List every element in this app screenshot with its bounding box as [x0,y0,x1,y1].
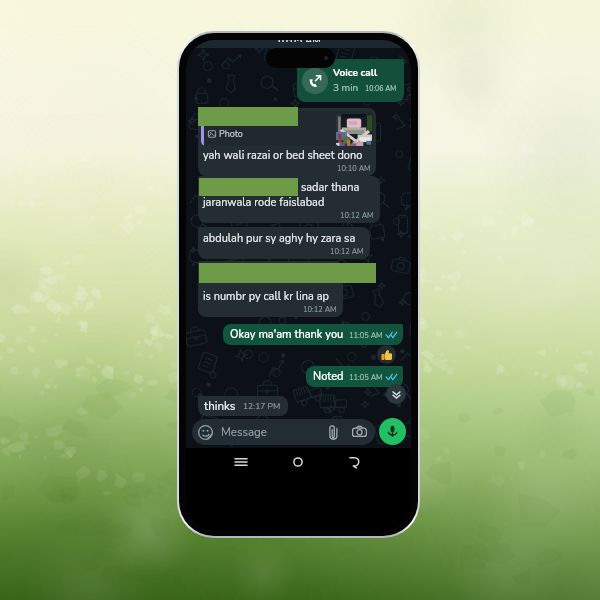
button[interactable]: Recent apps [227,448,255,476]
staticText: sadar thana [301,180,360,195]
button[interactable]: Okay ma'am thank you [223,324,403,345]
staticText: Noted [313,369,344,384]
staticText: Photo [219,128,243,140]
button[interactable]: Photo [198,108,376,176]
staticText: yah wali razai or bed sheet dono [203,148,363,163]
staticText: 10:05 AM [276,40,321,42]
staticText: Message [221,424,267,440]
staticText: 10:12 AM [340,210,374,220]
staticText: jaranwala rode faislabad [203,195,325,210]
staticText: 12:17 PM [243,400,281,412]
staticText: 11:05 AM [349,372,383,382]
staticText: Okay ma'am thank you [230,327,344,342]
staticText: thinks [204,398,236,414]
button[interactable]: Thumbs up reaction [377,345,396,364]
staticText: 10:12 AM [330,246,364,256]
button[interactable]: Record voice message [379,418,406,445]
button[interactable]: sadar thana [198,176,380,223]
button[interactable]: is numbr py call kr lina ap [198,261,343,317]
staticText: 11:05 AM [349,330,383,340]
staticText: Voice call [333,66,378,80]
staticText: 3 min [333,81,359,95]
button[interactable]: Noted [306,366,403,387]
staticText: is numbr py call kr lina ap [203,289,329,304]
staticText: 10:10 AM [337,163,371,173]
button[interactable]: Scroll to bottom [386,384,406,404]
button[interactable]: Home [284,448,312,476]
staticText: abdulah pur sy aghy hy zara sa [203,231,356,246]
staticText: 10:12 AM [303,304,337,314]
button[interactable]: abdulah pur sy aghy hy zara sa [198,227,370,259]
button[interactable]: Voice call [297,59,404,102]
staticText: 10:06 AM [365,84,397,94]
button[interactable]: thinks [198,396,288,416]
button[interactable]: Message [192,419,375,445]
button[interactable]: Back [340,448,368,476]
